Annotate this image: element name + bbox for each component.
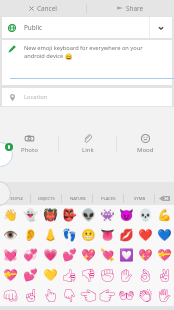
staticText: Mood — [137, 146, 154, 154]
staticText: 👅 — [100, 228, 115, 242]
button[interactable]: Public — [2, 17, 172, 38]
button[interactable]: Change audience — [150, 17, 172, 38]
button[interactable]: 👹 — [40, 205, 60, 225]
button[interactable]: 👍 — [60, 265, 79, 285]
staticText: Share — [126, 4, 144, 13]
staticText: 💪 — [157, 208, 172, 222]
staticText: 💛 — [43, 268, 58, 282]
button[interactable]: 💕 — [60, 245, 79, 265]
staticText: 💖 — [81, 248, 96, 262]
staticText: PEOPLE — [8, 196, 24, 202]
button[interactable]: 👉 — [98, 285, 117, 305]
button[interactable]: OBJECTS — [31, 192, 62, 205]
staticText: 👇 — [61, 288, 78, 303]
button[interactable]: 👂 — [20, 225, 40, 245]
button[interactable]: 👣 — [60, 225, 79, 245]
button[interactable]: 💗 — [40, 245, 60, 265]
button[interactable]: 💖 — [79, 245, 98, 265]
staticText: 😬 — [81, 228, 96, 242]
button[interactable]: 👃 — [40, 225, 60, 245]
staticText: 👺 — [62, 208, 77, 222]
staticText: 💝 — [157, 248, 172, 262]
button[interactable]: 💝 — [155, 245, 174, 265]
staticText: 💕 — [62, 248, 77, 262]
button[interactable]: 💖 — [136, 245, 155, 265]
staticText: Public — [24, 23, 43, 32]
staticText: 🖐 — [156, 288, 173, 303]
button[interactable]: Link — [59, 127, 116, 161]
staticText: 👃 — [43, 228, 58, 242]
button[interactable]: 💙 — [155, 225, 174, 245]
button[interactable]: 👽 — [79, 205, 98, 225]
button[interactable]: 💋 — [117, 225, 136, 245]
button[interactable]: SYMB — [124, 192, 155, 205]
button[interactable]: 💓 — [0, 245, 20, 265]
button[interactable]: 👋 — [0, 205, 20, 225]
button[interactable]: PLACES — [93, 192, 124, 205]
staticText: ✋ — [118, 268, 135, 283]
staticText: android device — [24, 52, 65, 60]
staticText: 👽 — [81, 208, 96, 222]
button[interactable]: 💟 — [117, 245, 136, 265]
button[interactable]: 💛 — [40, 265, 60, 285]
staticText: 💞 — [23, 248, 38, 262]
button[interactable]: 👊 — [0, 285, 20, 305]
staticText: 👈 — [80, 288, 97, 303]
staticText: 👻 — [23, 208, 38, 222]
button[interactable]: 😈 — [117, 205, 136, 225]
button[interactable]: 💕 — [20, 265, 40, 285]
staticText: Photo — [21, 146, 38, 154]
staticText: 👏 — [137, 288, 154, 303]
staticText: ❤️ — [138, 228, 153, 242]
staticText: 💋 — [119, 228, 134, 242]
staticText: NATURE — [70, 196, 86, 202]
staticText: OBJECTS — [38, 196, 55, 202]
button[interactable]: ☝ — [20, 285, 40, 305]
staticText: PLACES — [101, 196, 116, 202]
staticText: 😄 — [65, 53, 73, 60]
button[interactable]: ❤️ — [136, 225, 155, 245]
button[interactable]: Cancel — [0, 0, 86, 16]
button[interactable]: PEOPLE — [0, 192, 31, 205]
button[interactable]: ✋ — [117, 265, 136, 285]
button[interactable]: 👻 — [20, 205, 40, 225]
staticText: 💝 — [3, 268, 18, 282]
staticText: Cancel — [37, 4, 57, 13]
button[interactable]: 👏 — [136, 285, 155, 305]
staticText: 👐 — [118, 288, 135, 303]
button[interactable]: 👺 — [60, 205, 79, 225]
button[interactable]: 💀 — [136, 205, 155, 225]
button[interactable]: 😬 — [79, 225, 98, 245]
button[interactable]: Share — [87, 0, 174, 16]
staticText: 👆 — [42, 288, 59, 303]
button[interactable]: 👈 — [79, 285, 98, 305]
button[interactable]: 💪 — [155, 205, 174, 225]
button[interactable]: Mood — [117, 127, 174, 161]
staticText: 💟 — [119, 248, 134, 262]
button[interactable]: Backspace — [155, 192, 174, 205]
button[interactable]: 👆 — [40, 285, 60, 305]
staticText: 💕 — [23, 268, 38, 282]
button[interactable]: ✊ — [98, 265, 117, 285]
button[interactable]: 👁 — [0, 225, 20, 245]
staticText: ✌ — [156, 268, 173, 283]
button[interactable]: 👐 — [117, 285, 136, 305]
button[interactable]: NATURE — [62, 192, 93, 205]
button[interactable]: 👇 — [60, 285, 79, 305]
staticText: 👍 — [61, 268, 78, 283]
button[interactable]: 👾 — [98, 205, 117, 225]
staticText: 👊 — [2, 288, 19, 303]
button[interactable]: Location — [2, 88, 172, 106]
button[interactable]: ✌ — [155, 265, 174, 285]
staticText: ✊ — [99, 268, 116, 283]
staticText: Link — [82, 146, 94, 154]
button[interactable]: Photo — [0, 127, 58, 161]
button[interactable]: 💘 — [98, 245, 117, 265]
staticText: 👎 — [80, 268, 97, 283]
button[interactable]: 💝 — [0, 265, 20, 285]
button[interactable]: 💞 — [20, 245, 40, 265]
button[interactable]: 👎 — [79, 265, 98, 285]
button[interactable]: 👌 — [136, 265, 155, 285]
button[interactable]: 🖐 — [155, 285, 174, 305]
button[interactable]: 👅 — [98, 225, 117, 245]
